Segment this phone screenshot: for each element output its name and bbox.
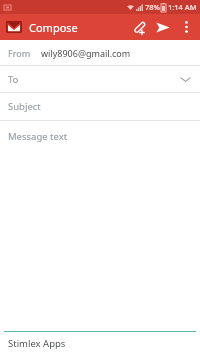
button[interactable]: Expand recipients [178,72,192,86]
staticText: Compose [29,20,78,35]
button[interactable]: Send [150,14,176,40]
button[interactable]: Message text [0,121,200,330]
staticText: wily8906@gmail.com [41,47,131,59]
button[interactable]: From [0,40,200,65]
button[interactable]: More options [176,14,196,40]
staticText: Subject [8,100,41,113]
button[interactable]: Attach file [126,14,150,40]
button[interactable]: To [0,66,200,92]
staticText: From [8,47,31,59]
button[interactable]: Stimlex Apps [0,333,200,353]
staticText: Message text [8,130,68,143]
staticText: 1:14 AM [168,2,197,12]
staticText: To [8,73,19,86]
button[interactable]: Gmail [5,19,23,35]
button[interactable]: Subject [0,93,200,120]
staticText: Stimlex Apps [8,337,66,350]
staticText: 78% [145,2,160,12]
